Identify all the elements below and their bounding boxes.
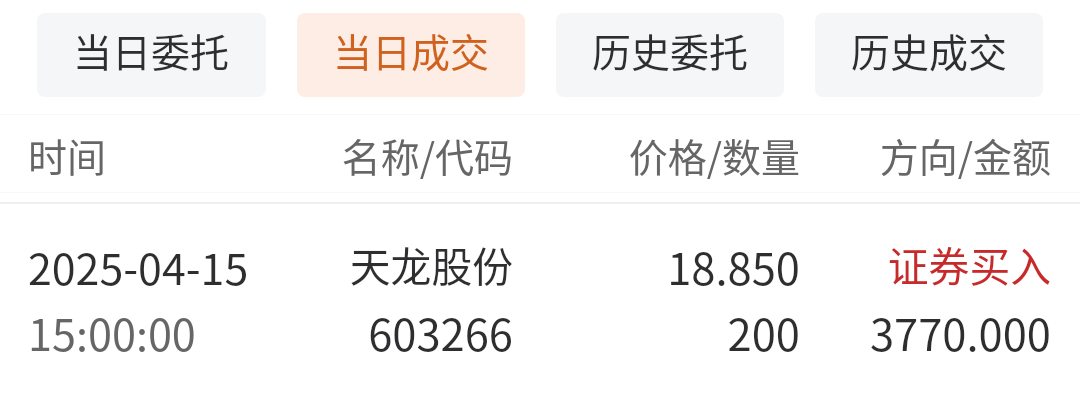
staticText: 历史委托	[592, 22, 749, 78]
staticText: 证券买入	[800, 235, 1051, 294]
button[interactable]: 2025-04-15	[0, 204, 1080, 395]
staticText: 3770.000	[800, 301, 1051, 364]
button[interactable]: 当日委托	[37, 13, 266, 97]
button[interactable]: 当日成交	[297, 13, 525, 97]
staticText: 历史成交	[851, 22, 1008, 78]
staticText: 时间	[28, 127, 272, 183]
staticText: 15:00:00	[28, 301, 272, 364]
staticText: 价格/数量	[513, 127, 800, 183]
button[interactable]: 历史委托	[556, 13, 784, 97]
staticText: 603266	[272, 301, 513, 364]
staticText: 方向/金额	[800, 127, 1051, 183]
staticText: 18.850	[513, 235, 800, 298]
staticText: 200	[513, 301, 800, 364]
staticText: 当日委托	[73, 22, 230, 78]
staticText: 2025-04-15	[28, 235, 272, 297]
staticText: 名称/代码	[272, 127, 513, 183]
staticText: 当日成交	[333, 22, 490, 78]
staticText: 天龙股份	[272, 235, 513, 294]
button[interactable]: 历史成交	[815, 13, 1043, 97]
